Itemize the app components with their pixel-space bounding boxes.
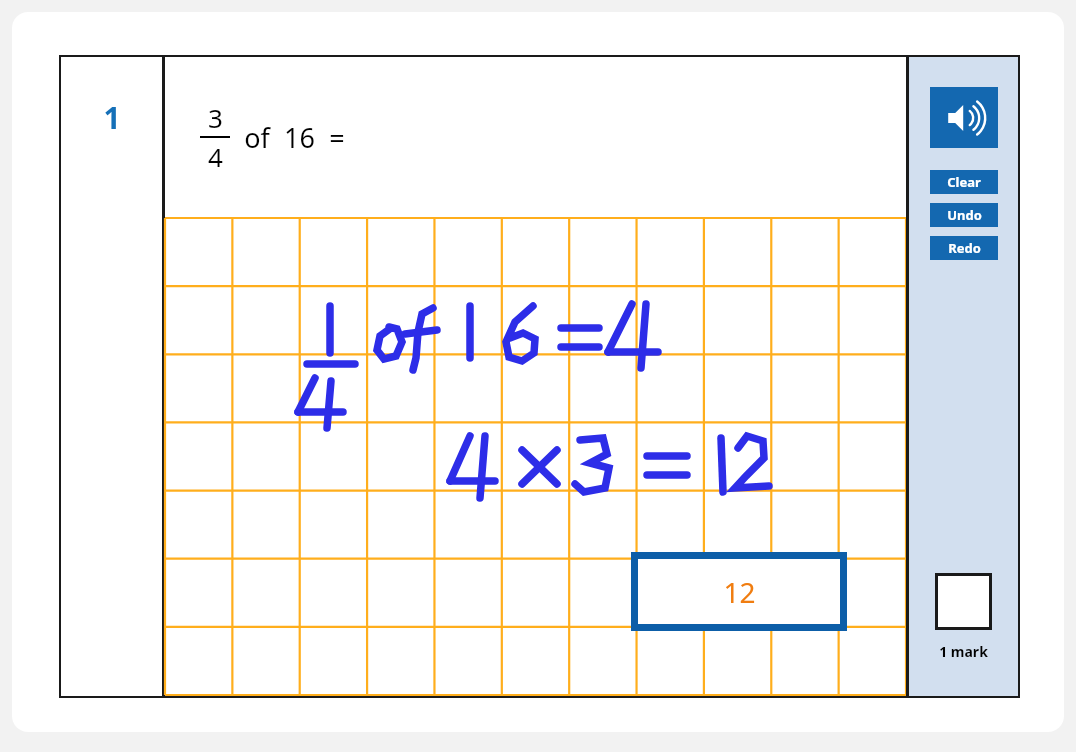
staticText: 3 bbox=[208, 100, 223, 135]
staticText: 1 bbox=[103, 97, 121, 138]
button[interactable]: 12 bbox=[631, 552, 847, 631]
staticText: Redo bbox=[948, 239, 981, 257]
staticText: 16 bbox=[284, 119, 315, 156]
button[interactable]: Undo bbox=[930, 203, 998, 227]
button[interactable]: Read aloud bbox=[930, 87, 998, 148]
staticText: 1 mark bbox=[939, 642, 988, 661]
staticText: of bbox=[244, 119, 270, 156]
staticText: Clear bbox=[947, 173, 981, 191]
button[interactable]: Redo bbox=[930, 236, 998, 260]
staticText: Undo bbox=[947, 206, 982, 224]
staticText: = bbox=[329, 119, 345, 156]
button[interactable]: Clear bbox=[930, 170, 998, 194]
staticText: 4 bbox=[208, 139, 223, 174]
staticText: 12 bbox=[723, 573, 756, 611]
